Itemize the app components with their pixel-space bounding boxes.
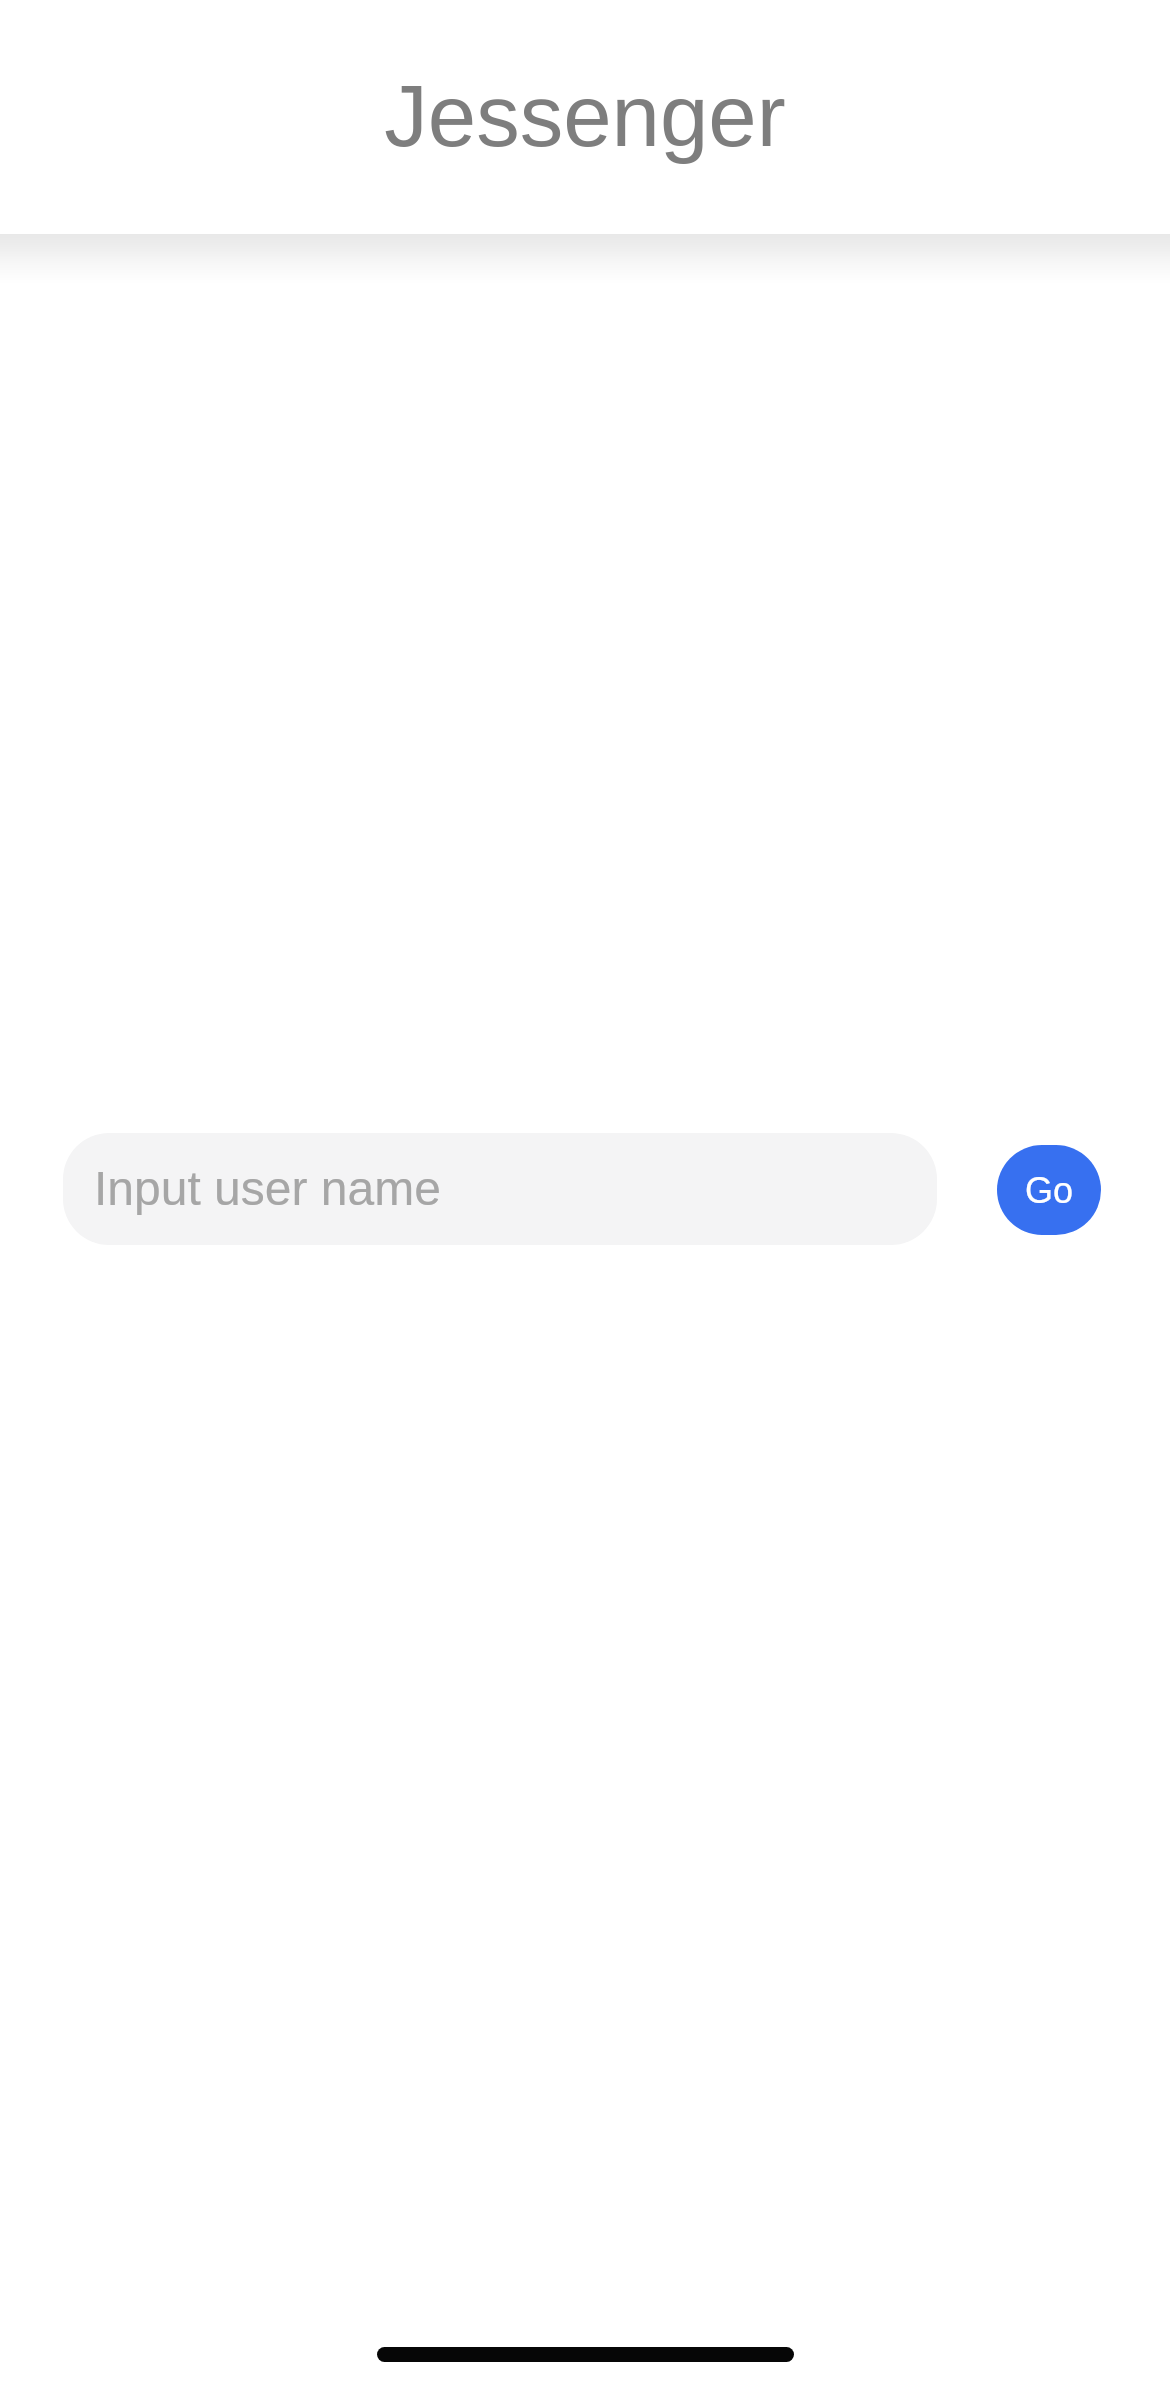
staticText: Input user name	[94, 1162, 441, 1216]
other: Home indicator	[377, 2347, 794, 2362]
button[interactable]: Input user name	[63, 1133, 937, 1245]
button[interactable]: Go	[997, 1145, 1101, 1235]
staticText: Jessenger	[384, 67, 786, 164]
staticText: Go	[1025, 1170, 1074, 1210]
